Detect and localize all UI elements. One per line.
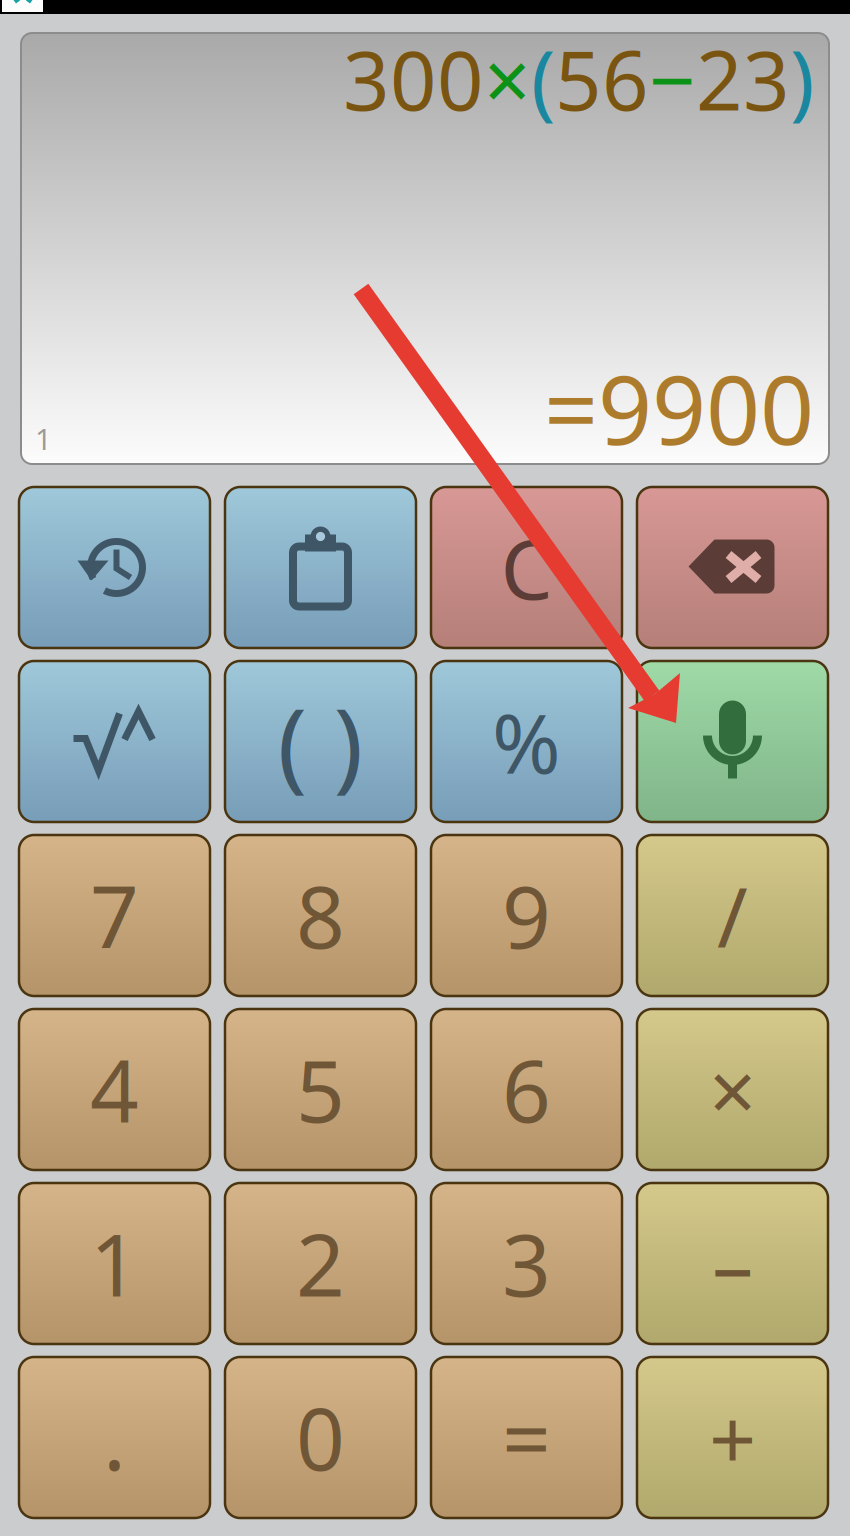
button[interactable]: Paste from clipboard [225,487,416,648]
staticText: – [712,1209,753,1318]
staticText: ( ) [277,676,363,807]
staticText: 56 [555,25,649,133]
button[interactable]: ( ) [225,661,416,822]
staticText: 5 [296,1033,345,1146]
staticText: 1 [35,419,52,458]
button[interactable]: History [19,487,210,648]
button[interactable]: × [637,1009,828,1170]
button[interactable]: – [637,1183,828,1344]
staticText: 4 [90,1033,139,1146]
staticText: 6 [502,1033,551,1146]
button[interactable]: C [431,487,622,648]
staticText: C [500,513,552,622]
button[interactable]: 2 [225,1183,416,1344]
staticText: 3 [502,1207,551,1320]
button[interactable]: % [431,661,622,822]
staticText: 0 [296,1381,345,1494]
button[interactable]: 8 [225,835,416,996]
staticText: 1 [90,1207,139,1320]
staticText: = [502,1381,551,1494]
button[interactable]: Square root and power [19,661,210,822]
button[interactable]: 0 [225,1357,416,1518]
button[interactable]: Voice input [637,661,828,822]
staticText: + [709,1383,756,1492]
staticText: 7 [90,859,139,972]
button[interactable]: 1 [19,1183,210,1344]
staticText: 2 [296,1207,345,1320]
staticText: % [492,687,561,796]
staticText: . [103,1381,126,1494]
staticText: ) [790,25,814,133]
staticText: × [484,25,531,133]
button[interactable]: 4 [19,1009,210,1170]
staticText: / [717,861,748,970]
staticText: ( [531,25,555,133]
button[interactable]: + [637,1357,828,1518]
button[interactable]: 5 [225,1009,416,1170]
button[interactable]: 3 [431,1183,622,1344]
staticText: 9 [502,859,551,972]
button[interactable]: Backspace [637,487,828,648]
button[interactable]: 6 [431,1009,622,1170]
staticText: − [649,25,696,133]
button[interactable]: 7 [19,835,210,996]
staticText: =9900 [544,345,814,471]
staticText: × [709,1035,756,1144]
button[interactable]: = [431,1357,622,1518]
button[interactable]: 9 [431,835,622,996]
button[interactable]: / [637,835,828,996]
button[interactable]: . [19,1357,210,1518]
staticText: 8 [296,859,345,972]
staticText: 23 [696,25,790,133]
staticText: 300 [343,25,484,133]
